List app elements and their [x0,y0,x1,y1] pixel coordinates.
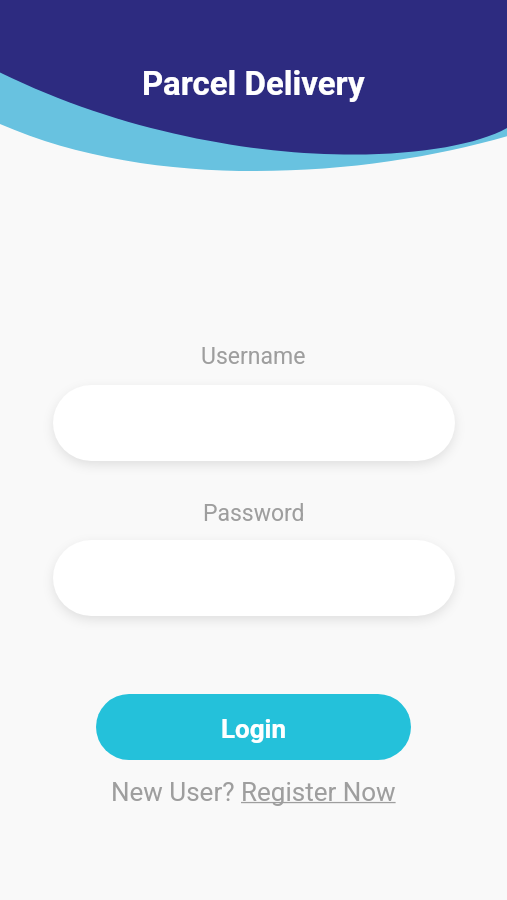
staticText: Login [221,714,287,744]
staticText: Username [201,343,306,370]
staticText: New User? [111,777,241,807]
staticText: Password [203,500,305,527]
button[interactable]: Register Now [241,777,396,807]
staticText: Register Now [241,777,396,807]
staticText: Parcel Delivery [142,64,365,103]
button[interactable]: Login [96,694,411,760]
